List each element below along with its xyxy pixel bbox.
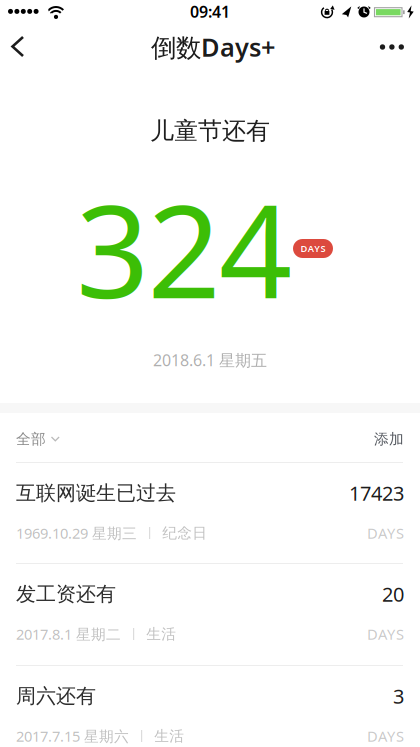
button[interactable]: More [370,22,414,72]
button[interactable]: 发工资还有 [0,564,420,666]
button[interactable]: 互联网诞生已过去 [0,463,420,564]
staticText: 互联网诞生已过去 [16,481,176,505]
staticText: 儿童节还有 [150,116,270,146]
staticText: 20 [382,581,404,607]
staticText: 添加 [374,430,404,448]
button[interactable]: Back [0,22,44,72]
staticText: 倒数Days+ [151,30,275,64]
staticText: 3 [393,683,404,709]
staticText: 生活 [146,625,176,643]
staticText: 2017.8.1 星期二 [16,624,121,644]
staticText: 09:41 [190,1,230,22]
staticText: 纪念日 [162,524,207,542]
staticText: DAYS [367,624,404,644]
staticText: DAYS [300,242,326,255]
staticText: 1969.10.29 星期三 [16,523,137,543]
staticText: 周六还有 [16,684,96,708]
staticText: 全部 [16,430,46,448]
staticText: DAYS [367,726,404,746]
button[interactable]: 全部 [16,430,60,448]
button[interactable]: 周六还有 [0,666,420,747]
staticText: 324 [76,163,292,333]
staticText: 2017.7.15 星期六 [16,726,129,746]
button[interactable]: 添加 [374,430,404,448]
staticText: DAYS [367,523,404,543]
staticText: 2018.6.1 星期五 [153,349,267,371]
staticText: 发工资还有 [16,582,116,606]
staticText: 生活 [154,727,184,745]
staticText: 17423 [349,480,404,506]
